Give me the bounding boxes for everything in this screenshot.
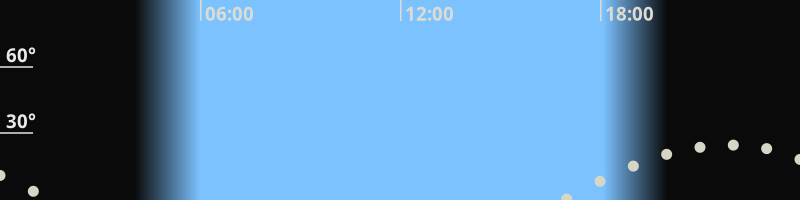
- staticText: 30°: [6, 109, 36, 133]
- staticText: 18:00: [605, 1, 654, 26]
- staticText: 60°: [6, 43, 36, 67]
- staticText: 06:00: [205, 1, 254, 26]
- staticText: 12:00: [405, 1, 454, 26]
